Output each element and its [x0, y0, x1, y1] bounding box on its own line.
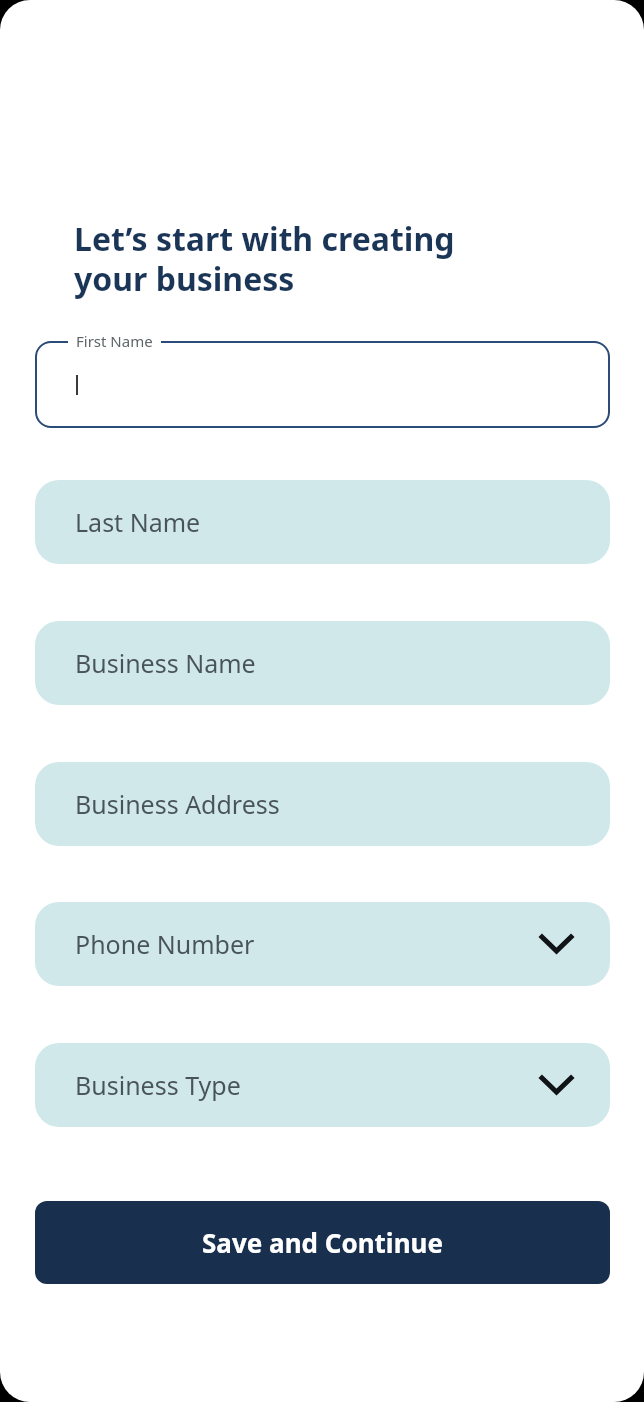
- button[interactable]: Business Name: [35, 621, 610, 705]
- button[interactable]: Last Name: [35, 480, 610, 564]
- staticText: Let’s start with creating your business: [74, 217, 455, 300]
- staticText: Business Address: [75, 787, 280, 821]
- staticText: Business Name: [75, 646, 256, 680]
- staticText: Phone Number: [75, 927, 255, 961]
- button[interactable]: [35, 341, 610, 428]
- button[interactable]: Save and Continue: [35, 1201, 610, 1284]
- button[interactable]: Phone Number: [35, 902, 610, 986]
- button[interactable]: Business Type: [35, 1043, 610, 1127]
- button[interactable]: Business Address: [35, 762, 610, 846]
- staticText: Save and Continue: [202, 1225, 443, 1260]
- staticText: Last Name: [75, 505, 201, 539]
- staticText: Business Type: [75, 1068, 241, 1102]
- staticText: First Name: [76, 331, 153, 351]
